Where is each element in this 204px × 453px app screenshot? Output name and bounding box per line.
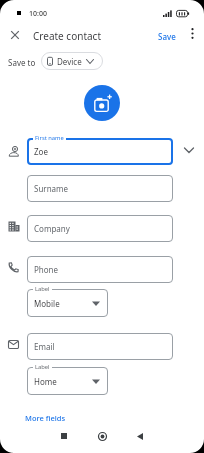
button[interactable]: Mobile <box>27 289 108 317</box>
staticText: Company <box>34 223 70 234</box>
button[interactable] <box>185 26 199 40</box>
staticText: Email <box>34 341 55 352</box>
button[interactable] <box>6 26 23 43</box>
button[interactable]: Save <box>153 26 181 47</box>
staticText: Label <box>35 285 50 293</box>
button[interactable]: Phone <box>27 256 173 283</box>
button[interactable]: Zoe <box>27 138 173 165</box>
staticText: Home <box>34 376 57 387</box>
staticText: First name <box>35 134 64 142</box>
staticText: Save <box>158 31 176 42</box>
button[interactable]: Surname <box>27 175 173 202</box>
staticText: Device <box>57 56 82 67</box>
button[interactable]: Device <box>41 52 103 70</box>
button[interactable] <box>56 428 72 444</box>
staticText: Create contact <box>33 29 102 43</box>
staticText: Surname <box>34 183 69 194</box>
button[interactable]: Company <box>27 215 173 242</box>
staticText: Zoe <box>34 146 48 157</box>
button[interactable] <box>132 428 148 444</box>
staticText: Label <box>35 363 50 371</box>
staticText: Phone <box>34 264 59 275</box>
staticText: Save to <box>8 57 36 68</box>
staticText: More fields <box>25 413 66 423</box>
staticText: 10:00 <box>29 9 47 19</box>
button[interactable] <box>94 428 110 444</box>
staticText: Mobile <box>34 298 60 309</box>
button[interactable]: Email <box>27 333 173 360</box>
button[interactable] <box>84 85 120 121</box>
button[interactable]: More fields <box>20 408 71 428</box>
button[interactable]: Home <box>27 367 108 395</box>
